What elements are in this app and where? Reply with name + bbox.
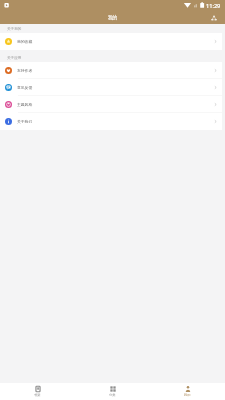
button[interactable]: 我的 (150, 383, 225, 400)
staticText: 我的收藏 (17, 39, 33, 44)
staticText: 关于我的 (7, 27, 22, 32)
staticText: 我的 (184, 393, 191, 397)
staticText: 意见反馈 (17, 85, 33, 90)
button[interactable]: 我的收藏 (0, 33, 222, 50)
staticText: 支持作者 (17, 68, 33, 73)
button[interactable]: 意见反馈 (0, 79, 222, 96)
staticText: 主题风格 (17, 102, 33, 107)
staticText: 关于我们 (17, 119, 33, 124)
staticText: 分类 (109, 393, 116, 397)
button[interactable]: 书架 (0, 383, 75, 400)
button[interactable]: 主题风格 (0, 96, 222, 113)
staticText: 关于应用 (7, 56, 22, 61)
button[interactable]: 支持作者 (0, 62, 222, 79)
button[interactable]: Share (208, 12, 219, 23)
staticText: 我的 (108, 15, 118, 21)
staticText: 书架 (34, 393, 41, 397)
staticText: 11:29 (206, 2, 221, 10)
button[interactable]: 关于我们 (0, 113, 222, 130)
button[interactable]: 分类 (75, 383, 150, 400)
